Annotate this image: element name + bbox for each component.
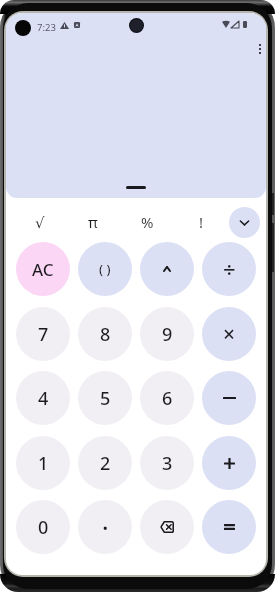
staticText: ×: [223, 320, 236, 349]
button[interactable]: Minus: [202, 371, 256, 425]
staticText: 7:23: [37, 21, 56, 34]
button[interactable]: 2: [78, 436, 132, 490]
staticText: √: [35, 214, 45, 231]
button[interactable]: π: [66, 198, 120, 246]
button[interactable]: ·: [78, 500, 132, 554]
button[interactable]: 4: [16, 371, 70, 425]
button[interactable]: 5: [78, 371, 132, 425]
button[interactable]: ÷: [202, 242, 256, 296]
staticText: 7: [38, 322, 49, 347]
button[interactable]: ×: [202, 307, 256, 361]
staticText: 6: [162, 386, 173, 411]
staticText: 8: [100, 322, 111, 347]
other: Power: [163, 266, 171, 272]
other: Plus: [224, 458, 235, 469]
staticText: 2: [100, 451, 111, 476]
button[interactable]: ( ): [78, 242, 132, 296]
staticText: ÷: [223, 254, 236, 284]
button[interactable]: 7: [16, 307, 70, 361]
button[interactable]: 6: [140, 371, 194, 425]
button[interactable]: %: [120, 198, 174, 246]
button[interactable]: AC: [16, 242, 70, 296]
button[interactable]: 8: [78, 307, 132, 361]
staticText: 9: [162, 322, 173, 347]
button[interactable]: √: [13, 198, 66, 246]
button[interactable]: 0: [16, 500, 70, 554]
staticText: ( ): [99, 260, 111, 278]
button[interactable]: 9: [140, 307, 194, 361]
button[interactable]: 1: [16, 436, 70, 490]
staticText: 0: [38, 515, 49, 540]
other: Minus: [223, 397, 236, 399]
other: Backspace: [160, 521, 174, 533]
staticText: 3: [162, 451, 173, 476]
button[interactable]: Plus: [202, 436, 256, 490]
staticText: π: [88, 212, 98, 232]
staticText: !: [199, 212, 204, 232]
button[interactable]: Backspace: [140, 500, 194, 554]
button[interactable]: !: [174, 198, 228, 246]
staticText: 4: [38, 386, 49, 411]
staticText: 5: [100, 386, 111, 411]
button[interactable]: More options: [249, 38, 266, 59]
staticText: AC: [32, 258, 54, 281]
other: Equals: [224, 524, 235, 530]
button[interactable]: 3: [140, 436, 194, 490]
button[interactable]: Equals: [202, 500, 256, 554]
staticText: ·: [102, 511, 109, 544]
staticText: 1: [38, 451, 49, 476]
staticText: %: [141, 212, 154, 232]
button[interactable]: More functions: [229, 207, 260, 238]
button[interactable]: Power: [140, 242, 194, 296]
